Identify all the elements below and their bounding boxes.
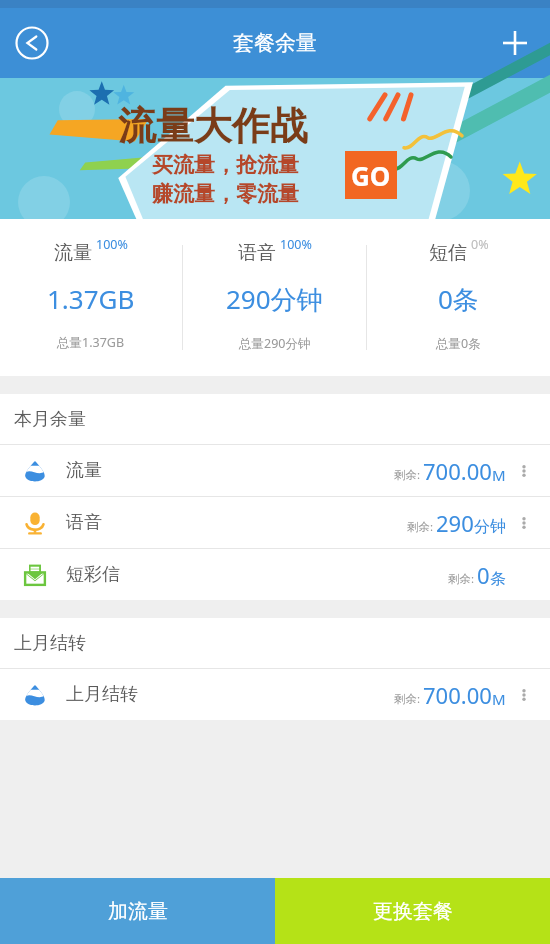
staticText: 条 [490,569,506,589]
staticText: 0条 [438,281,479,317]
staticText: 700.00 [423,680,492,710]
staticText: 分钟 [474,517,506,537]
staticText: 290 [436,508,474,538]
staticText: 总量290分钟 [239,335,311,352]
staticText: 总量0条 [436,335,481,352]
staticText: 剩余: [448,571,475,587]
staticText: 赚流量，零流量 [152,181,299,207]
staticText: 700.00 [423,456,492,486]
button[interactable]: 语音 [183,219,366,376]
button[interactable]: 语音 [0,497,550,548]
button[interactable]: Add [492,20,538,66]
staticText: 剩余: [394,691,421,707]
staticText: 100% [96,236,128,253]
staticText: 流量 [66,459,102,482]
staticText: 剩余: [394,467,421,483]
staticText: 上月结转 [14,632,86,655]
staticText: 1.37GB [47,281,135,316]
staticText: 流量大作战 [118,102,308,150]
staticText: 100% [280,236,312,253]
button[interactable]: 流量 [0,445,550,496]
staticText: 0 [477,560,490,590]
staticText: 总量1.37GB [57,334,125,351]
staticText: GO [351,158,391,193]
button[interactable]: More options [506,669,542,720]
staticText: 套餐余量 [233,30,317,56]
staticText: 短信 [429,241,467,265]
button[interactable]: 上月结转 [0,669,550,720]
staticText: M [492,689,506,709]
button[interactable]: More options [506,445,542,496]
staticText: 剩余: [407,519,434,535]
button[interactable]: 更换套餐 [275,878,550,944]
button[interactable]: More options [506,497,542,548]
staticText: 更换套餐 [373,899,453,924]
staticText: 语音 [66,511,102,534]
staticText: 上月结转 [66,683,138,706]
staticText: 0% [471,236,489,253]
staticText: 流量 [54,241,92,265]
staticText: M [492,465,506,485]
staticText: 290分钟 [226,281,323,317]
staticText: 买流量，抢流量 [152,152,299,178]
button[interactable]: Back [10,21,54,65]
button[interactable]: 加流量 [0,878,275,944]
button[interactable]: 短彩信 [0,549,550,600]
button[interactable]: 短信 [367,219,550,376]
staticText: 短彩信 [66,563,120,586]
staticText: 加流量 [108,899,168,924]
staticText: 本月余量 [14,408,86,431]
button[interactable]: 流量 [0,219,182,376]
staticText: 语音 [238,241,276,265]
